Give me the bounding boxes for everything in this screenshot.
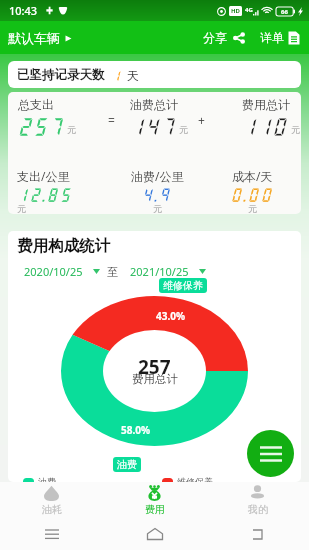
staticText: 费用总计 (132, 372, 178, 386)
staticText: 成本/天 (232, 168, 273, 184)
staticText: 1 (112, 69, 120, 82)
staticText: 油费/公里 (131, 168, 184, 184)
staticText: 分享 (203, 30, 227, 45)
staticText: 天 (127, 68, 139, 83)
staticText: 4.9 (142, 186, 172, 203)
staticText: 4G (245, 6, 253, 14)
staticText: 支出/公里 (17, 168, 70, 184)
staticText: 详单 (260, 30, 284, 45)
staticText: 维修保养 (163, 279, 203, 292)
staticText: 元 (291, 124, 300, 135)
staticText: 油费总计 (130, 97, 178, 112)
staticText: 默认车辆 (8, 30, 60, 46)
staticText: 元 (153, 203, 162, 214)
staticText: 费用总计 (242, 97, 290, 112)
button[interactable]: 我的 (206, 482, 309, 518)
staticText: 元 (248, 203, 257, 214)
button[interactable]: 2021/10/25 (130, 261, 206, 282)
staticText: 10:43 (9, 3, 38, 18)
button[interactable]: 2020/10/25 (24, 261, 100, 282)
staticText: 油费 (117, 458, 137, 471)
staticText: = (108, 112, 115, 128)
staticText: 至 (107, 265, 118, 279)
staticText: 257 (18, 115, 64, 137)
button[interactable]: 油耗 (0, 482, 103, 518)
staticText: 总支出 (18, 97, 54, 112)
staticText: 110 (242, 115, 288, 137)
staticText: 维修保养 (177, 476, 213, 482)
staticText: 66 (281, 8, 288, 16)
button[interactable]: 费用 (103, 482, 206, 518)
staticText: 费用构成统计 (17, 236, 110, 256)
staticText: 147 (130, 115, 176, 137)
button[interactable]: Back (206, 518, 309, 550)
staticText: 油耗 (42, 503, 62, 516)
button[interactable]: Home (103, 518, 206, 550)
staticText: 0.00 (231, 186, 274, 203)
staticText: 257 (138, 354, 171, 380)
staticText: 元 (67, 124, 76, 135)
button[interactable]: Recents (0, 518, 103, 550)
button[interactable]: 分享 (201, 26, 248, 49)
staticText: 2020/10/25 (24, 264, 83, 279)
staticText: 元 (17, 203, 26, 214)
staticText: 12.85 (17, 186, 73, 203)
staticText: 费用 (145, 503, 165, 516)
staticText: 43.0% (156, 309, 185, 323)
staticText: 2021/10/25 (130, 264, 189, 279)
button[interactable]: Menu (247, 430, 294, 477)
staticText: HD (231, 7, 240, 15)
button[interactable]: 默认车辆 (0, 26, 78, 50)
staticText: 58.0% (121, 423, 150, 437)
staticText: 我的 (248, 503, 268, 516)
staticText: + (198, 112, 205, 128)
staticText: 已坚持记录天数 (17, 67, 105, 83)
staticText: 油费 (38, 476, 56, 482)
staticText: 元 (179, 124, 188, 135)
button[interactable]: 已坚持记录天数 (8, 61, 301, 88)
button[interactable]: 详单 (258, 26, 302, 49)
